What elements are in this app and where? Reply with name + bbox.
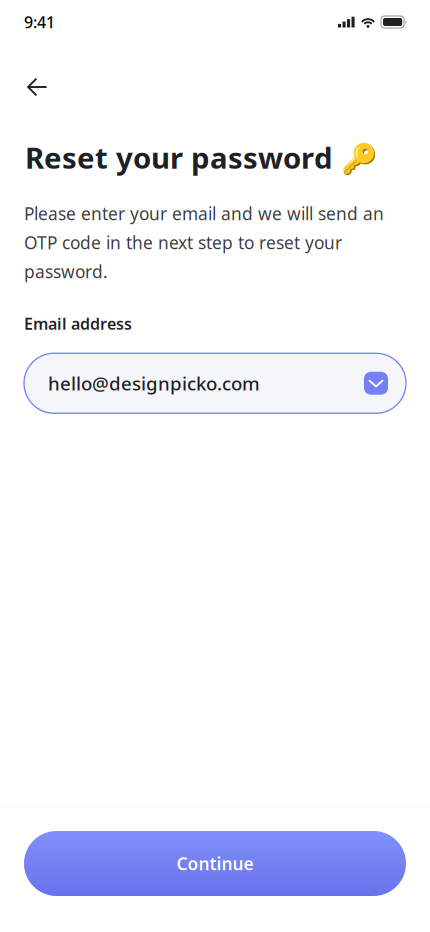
staticText: hello@designpicko.com <box>48 371 260 396</box>
staticText: Please enter your email and we will send… <box>24 202 384 283</box>
staticText: Email address <box>24 313 132 334</box>
button[interactable]: Continue <box>24 831 406 896</box>
staticText: Continue <box>176 852 253 875</box>
button[interactable]: Back <box>27 65 66 109</box>
staticText: Reset your password 🔑 <box>25 138 378 177</box>
button[interactable]: hello@designpicko.com <box>24 353 406 413</box>
staticText: 9:41 <box>24 11 55 33</box>
